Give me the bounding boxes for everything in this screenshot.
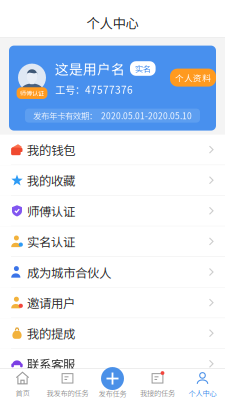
staticText: 2020.05.01-2020.05.10 — [101, 109, 192, 122]
button[interactable]: 我的钱包 — [0, 135, 225, 165]
staticText: 个人资料 — [175, 71, 211, 84]
button[interactable]: 我的收藏 — [0, 165, 225, 196]
staticText: 工号：47577376 — [55, 82, 133, 97]
staticText: 实名认证 — [27, 232, 75, 250]
staticText: 师傅认证 — [20, 89, 44, 98]
staticText: 发布年卡有效期： — [33, 109, 97, 122]
staticText: 这是用户名 — [55, 58, 125, 79]
staticText: 师傅认证 — [27, 202, 75, 220]
staticText: 我的钱包 — [27, 141, 75, 159]
staticText: 成为城市合伙人 — [27, 263, 111, 281]
staticText: 我的收藏 — [27, 171, 75, 189]
button[interactable]: 个人资料 — [170, 69, 216, 87]
staticText: 我发布的任务 — [46, 387, 88, 398]
button[interactable]: 我的提成 — [0, 318, 225, 349]
button[interactable]: 我接的任务 — [135, 369, 180, 400]
staticText: 发布任务 — [98, 388, 126, 398]
button[interactable]: 成为城市合伙人 — [0, 257, 225, 288]
staticText: 联系客服 — [27, 355, 75, 373]
button[interactable]: 个人中心 — [180, 369, 225, 400]
staticText: 个人中心 — [86, 13, 138, 32]
staticText: 首页 — [15, 387, 29, 398]
button[interactable]: 邀请用户 — [0, 288, 225, 318]
button[interactable]: 首页 — [0, 369, 45, 400]
staticText: 邀请用户 — [27, 294, 75, 312]
staticText: 个人中心 — [188, 387, 216, 398]
staticText: 实名 — [135, 62, 151, 74]
staticText: 我的提成 — [27, 324, 75, 342]
button[interactable]: 发布任务 — [90, 369, 135, 400]
button[interactable]: 实名认证 — [0, 226, 225, 257]
button[interactable]: 我发布的任务 — [45, 369, 90, 400]
staticText: 我接的任务 — [140, 387, 175, 398]
button[interactable]: 联系客服 — [0, 349, 225, 379]
button[interactable]: 师傅认证 — [0, 196, 225, 226]
